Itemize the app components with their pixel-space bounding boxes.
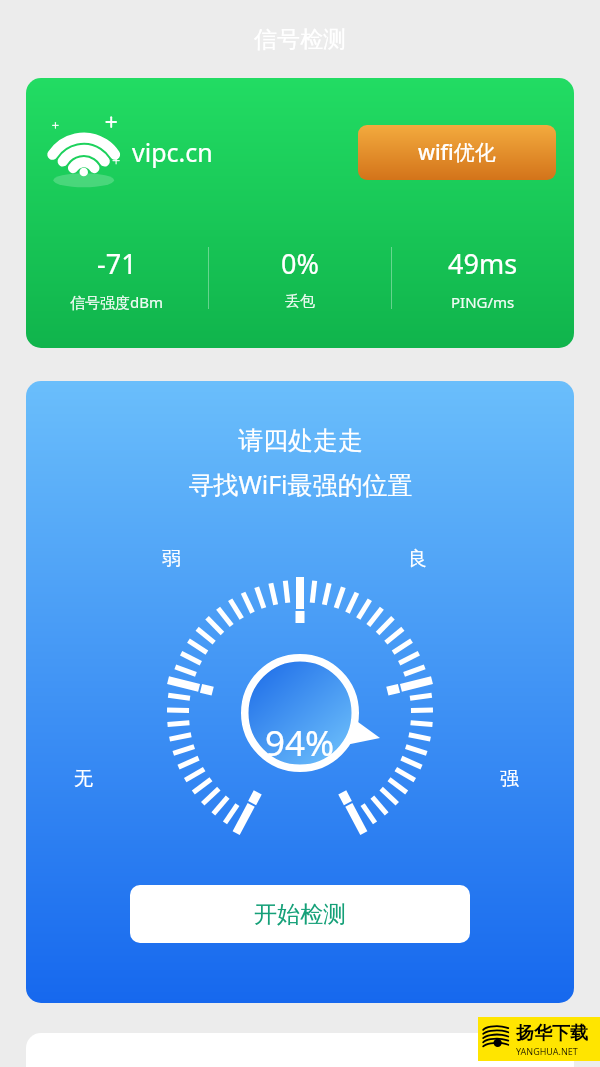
button[interactable]: 开始检测 bbox=[130, 885, 470, 943]
staticText: 扬华下载 bbox=[516, 1022, 588, 1045]
staticText: 信号检测 bbox=[254, 25, 346, 54]
staticText: YANGHUA.NET bbox=[516, 1045, 578, 1057]
staticText: 请四处走走 bbox=[238, 425, 363, 456]
staticText: 良 bbox=[408, 547, 427, 571]
button[interactable]: wifi优化 bbox=[358, 125, 556, 180]
staticText: 弱 bbox=[162, 547, 181, 571]
staticText: 94% bbox=[265, 719, 335, 767]
staticText: 0% bbox=[281, 245, 319, 282]
staticText: wifi优化 bbox=[418, 138, 496, 167]
staticText: 无 bbox=[74, 767, 93, 791]
staticText: PING/ms bbox=[451, 292, 515, 312]
staticText: 49ms bbox=[448, 245, 518, 282]
other: WiFi signal bbox=[46, 111, 128, 193]
staticText: 寻找WiFi最强的位置 bbox=[188, 467, 413, 501]
staticText: 开始检测 bbox=[254, 900, 346, 929]
staticText: 信号强度dBm bbox=[70, 292, 164, 312]
staticText: 强 bbox=[500, 767, 519, 791]
staticText: vipc.cn bbox=[132, 135, 213, 169]
staticText: 丢包 bbox=[285, 292, 315, 311]
staticText: -71 bbox=[97, 245, 137, 282]
